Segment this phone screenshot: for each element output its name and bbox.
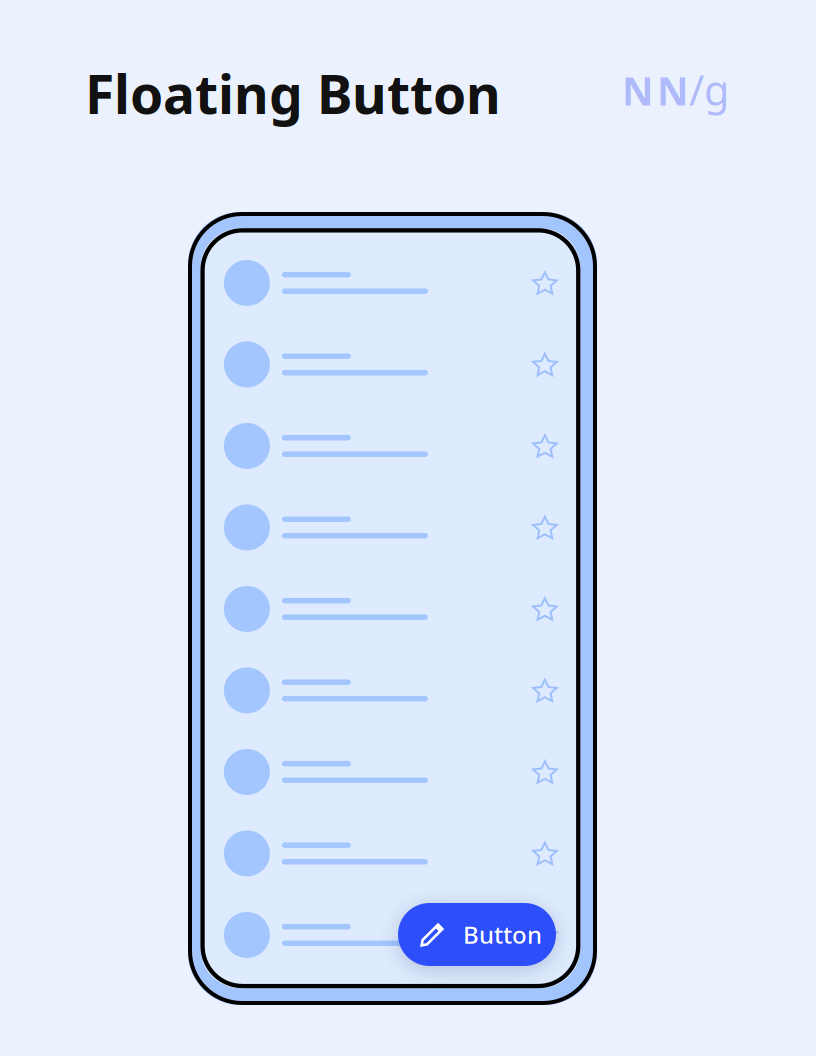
staticText: N xyxy=(657,65,688,116)
button[interactable]: List item xyxy=(224,650,557,731)
button[interactable]: List item xyxy=(224,405,557,487)
button[interactable]: Favourite xyxy=(532,517,557,538)
button[interactable]: List item xyxy=(224,731,557,813)
button[interactable]: Favourite xyxy=(532,843,557,864)
button[interactable]: List item xyxy=(224,568,557,650)
button[interactable]: List item xyxy=(224,242,557,324)
button[interactable]: Favourite xyxy=(532,598,557,620)
staticText: Button xyxy=(463,919,542,950)
button[interactable]: List item xyxy=(224,324,557,405)
staticText: N xyxy=(622,65,653,116)
button[interactable]: Favourite xyxy=(532,924,557,946)
button[interactable]: Favourite xyxy=(532,761,557,783)
staticText: Floating Button xyxy=(85,58,501,129)
button[interactable]: Favourite xyxy=(532,435,557,457)
staticText: /g xyxy=(689,62,729,117)
button[interactable]: Favourite xyxy=(532,354,557,375)
button[interactable]: List item xyxy=(224,813,557,894)
button[interactable]: Button xyxy=(398,903,556,966)
button[interactable]: Favourite xyxy=(532,272,557,294)
button[interactable]: List item xyxy=(224,894,557,976)
button[interactable]: Favourite xyxy=(532,680,557,701)
button[interactable]: List item xyxy=(224,487,557,568)
